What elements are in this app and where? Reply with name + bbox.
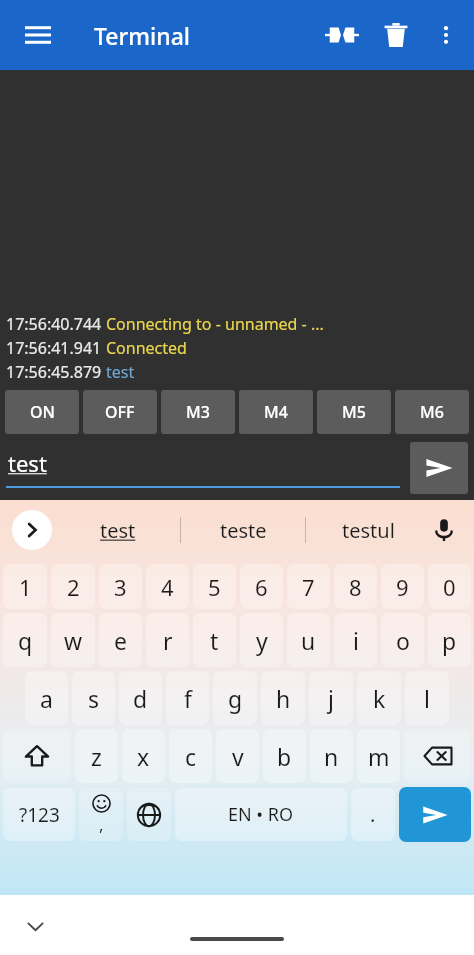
button[interactable]: r — [146, 613, 189, 667]
staticText: Connected — [106, 337, 187, 359]
button[interactable]: b — [263, 729, 306, 783]
button[interactable]: h — [261, 671, 305, 725]
staticText: Connecting to - unnamed - ... — [106, 313, 324, 335]
staticText: , — [99, 813, 104, 836]
button[interactable]: 0 — [428, 564, 471, 609]
button[interactable]: f — [166, 671, 209, 725]
staticText: s — [88, 683, 100, 714]
staticText: OFF — [105, 401, 135, 423]
button[interactable]: test — [6, 448, 400, 488]
staticText: x — [137, 741, 150, 772]
button[interactable]: 8 — [334, 564, 377, 609]
staticText: 17:56:45.879 — [6, 361, 106, 383]
button[interactable]: o — [381, 613, 424, 667]
button[interactable]: M6 — [395, 390, 469, 434]
button[interactable]: 1 — [3, 564, 47, 609]
button[interactable]: Connect — [314, 7, 370, 63]
button[interactable]: 2 — [51, 564, 95, 609]
button[interactable]: Backspace — [404, 729, 471, 783]
staticText: u — [301, 625, 316, 656]
button[interactable]: u — [287, 613, 330, 667]
button[interactable]: e — [99, 613, 142, 667]
button[interactable]: OFF — [83, 390, 157, 434]
staticText: teste — [220, 517, 267, 544]
button[interactable]: i — [334, 613, 377, 667]
staticText: 3 — [114, 572, 127, 602]
button[interactable]: k — [357, 671, 401, 725]
button[interactable]: ?123 — [3, 788, 75, 841]
staticText: test — [100, 517, 136, 544]
button[interactable]: M4 — [239, 390, 313, 434]
staticText: . — [370, 801, 376, 828]
staticText: test — [106, 361, 135, 383]
button[interactable]: Expand toolbar — [12, 510, 52, 550]
button[interactable]: Change language — [127, 788, 171, 841]
button[interactable]: . — [351, 788, 395, 841]
staticText: 0 — [443, 572, 456, 602]
button[interactable]: test — [56, 500, 180, 560]
staticText: M4 — [264, 401, 288, 423]
button[interactable]: ON — [5, 390, 79, 434]
button[interactable]: v — [216, 729, 259, 783]
staticText: 9 — [396, 572, 409, 602]
button[interactable]: Send — [399, 787, 471, 842]
staticText: p — [442, 625, 457, 656]
button[interactable]: l — [405, 671, 449, 725]
button[interactable]: 4 — [146, 564, 189, 609]
staticText: t — [210, 625, 219, 656]
button[interactable]: 9 — [381, 564, 424, 609]
button[interactable]: q — [3, 613, 47, 667]
button[interactable]: testul — [306, 500, 430, 560]
staticText: d — [133, 683, 148, 714]
button[interactable]: z — [75, 729, 118, 783]
button[interactable]: x — [122, 729, 165, 783]
staticText: g — [228, 683, 243, 714]
button[interactable]: Open navigation menu — [14, 11, 62, 59]
button[interactable]: s — [72, 671, 115, 725]
staticText: h — [276, 683, 291, 714]
staticText: M3 — [186, 401, 210, 423]
button[interactable]: 5 — [193, 564, 236, 609]
button[interactable]: t — [193, 613, 236, 667]
staticText: c — [185, 741, 197, 772]
button[interactable]: Clear — [370, 9, 422, 61]
button[interactable]: m — [357, 729, 400, 783]
staticText: n — [324, 741, 339, 772]
staticText: w — [64, 625, 83, 656]
button[interactable]: c — [169, 729, 212, 783]
staticText: o — [396, 625, 410, 656]
button[interactable]: d — [119, 671, 162, 725]
button[interactable]: n — [310, 729, 353, 783]
staticText: ON — [30, 401, 55, 423]
button[interactable]: Shift — [3, 729, 71, 783]
button[interactable]: More options — [422, 11, 470, 59]
button[interactable]: EN • RO — [175, 788, 347, 841]
button[interactable]: M5 — [317, 390, 391, 434]
button[interactable]: Hide keyboard — [18, 909, 52, 943]
button[interactable]: Send — [410, 442, 468, 494]
staticText: r — [163, 625, 173, 656]
staticText: test — [8, 448, 47, 478]
staticText: 2 — [67, 572, 80, 602]
button[interactable]: w — [51, 613, 95, 667]
button[interactable]: teste — [181, 500, 305, 560]
button[interactable]: Voice input — [422, 508, 466, 552]
button[interactable]: 3 — [99, 564, 142, 609]
staticText: j — [328, 683, 334, 714]
staticText: m — [368, 741, 390, 772]
staticText: v — [232, 741, 244, 772]
button[interactable]: y — [240, 613, 283, 667]
button[interactable]: 7 — [287, 564, 330, 609]
staticText: e — [114, 625, 127, 656]
button[interactable]: g — [213, 671, 257, 725]
staticText: 17:56:40.744 — [6, 313, 106, 335]
staticText: l — [424, 683, 430, 714]
button[interactable]: p — [428, 613, 471, 667]
button[interactable]: Emoji — [79, 788, 123, 841]
staticText: b — [277, 741, 292, 772]
button[interactable]: j — [309, 671, 353, 725]
button[interactable]: 6 — [240, 564, 283, 609]
button[interactable]: a — [25, 671, 68, 725]
button[interactable]: M3 — [161, 390, 235, 434]
staticText: M6 — [420, 401, 444, 423]
